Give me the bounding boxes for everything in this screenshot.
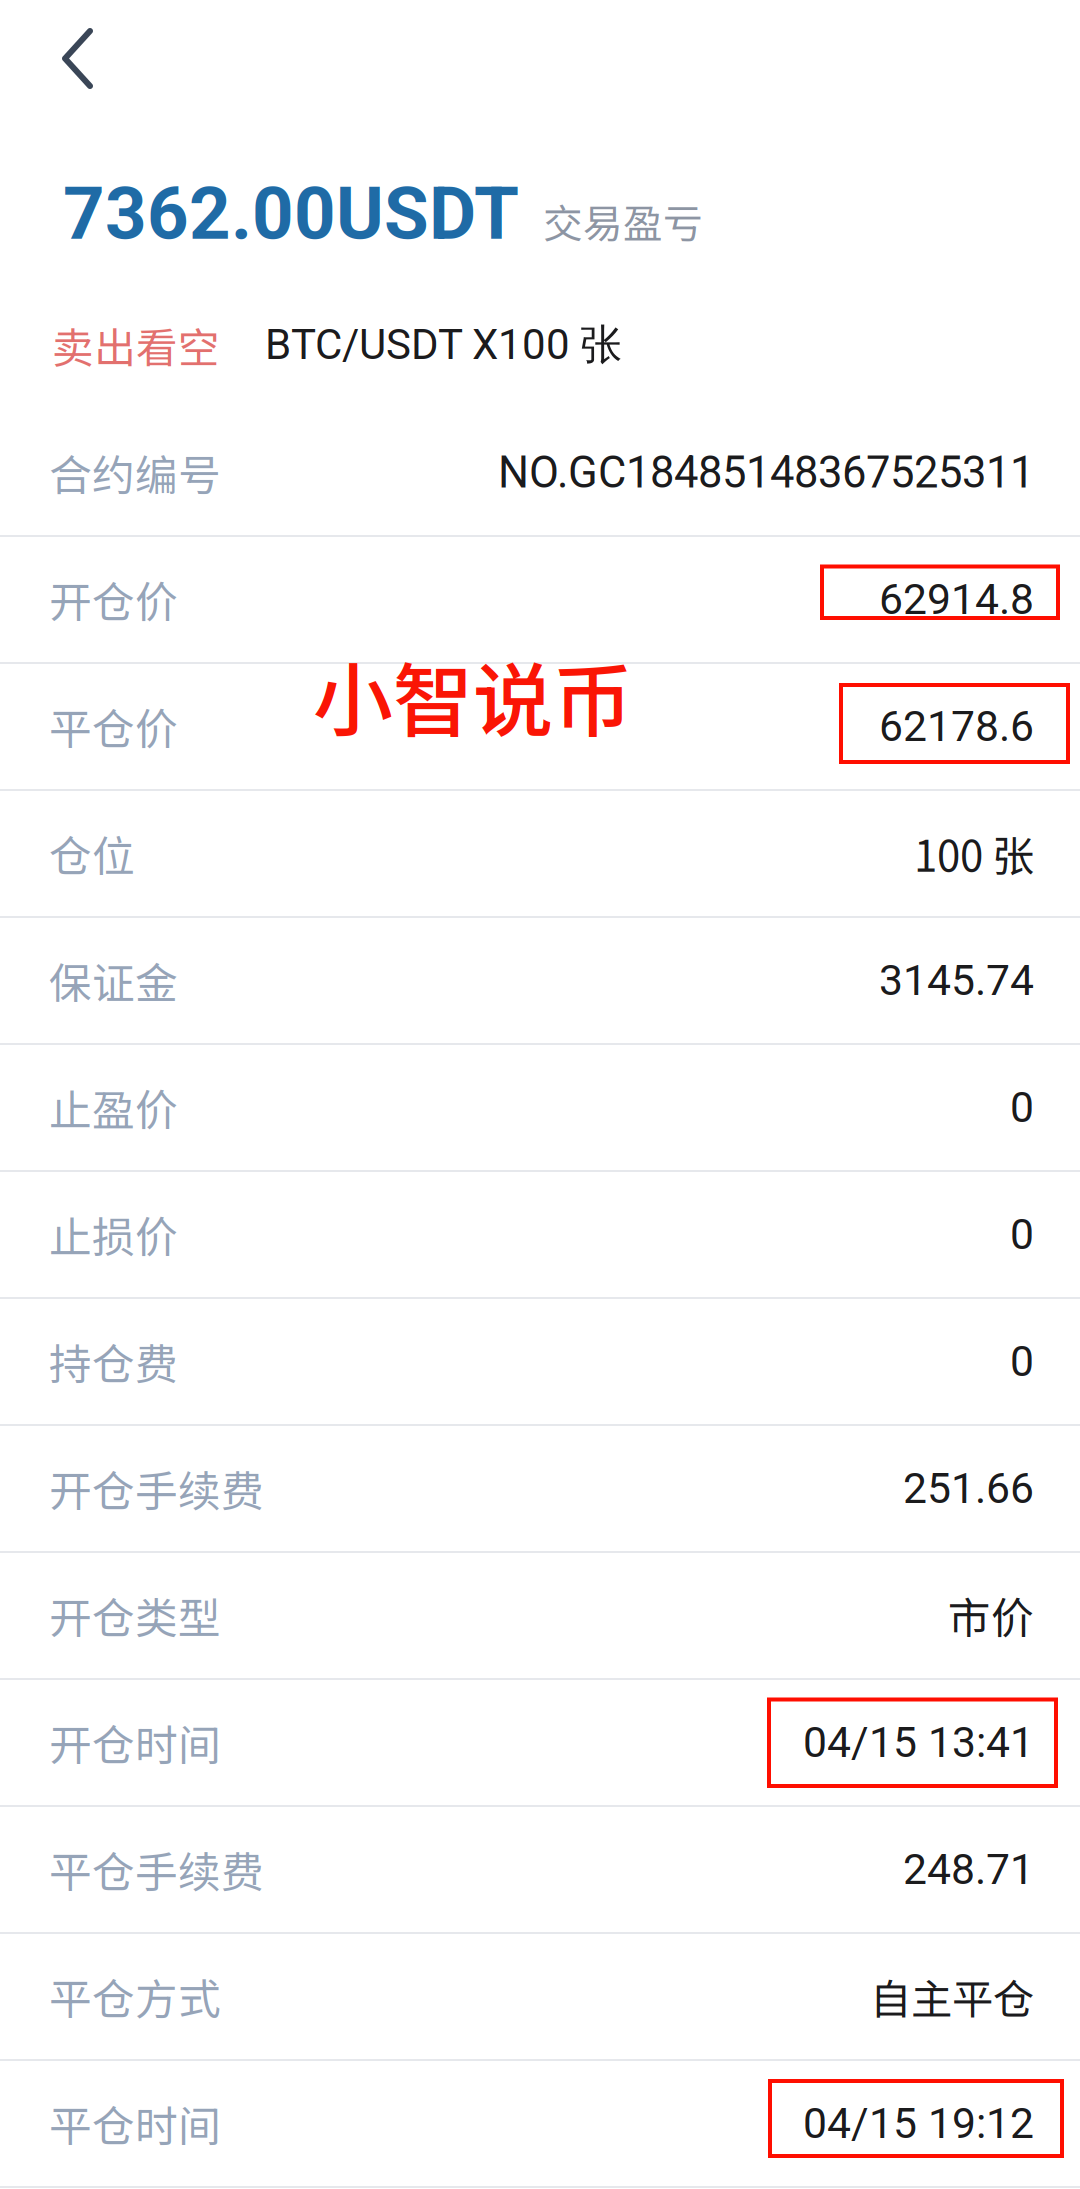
staticText: 62914.8 [879, 574, 1034, 624]
staticText: 0 [1010, 1209, 1034, 1259]
button[interactable]: 开仓价 [0, 537, 1080, 664]
staticText: 小智说币 [313, 637, 633, 753]
staticText: 卖出看空 [52, 315, 220, 375]
staticText: 开仓价 [49, 569, 178, 630]
button[interactable]: 保证金 [0, 918, 1080, 1045]
button[interactable]: 止盈价 [0, 1045, 1080, 1172]
staticText: NO.GC18485148367525311 [498, 447, 1034, 498]
staticText: 0 [1010, 1082, 1034, 1132]
staticText: 平仓方式 [49, 1966, 221, 2027]
button[interactable]: 仓位 [0, 791, 1080, 918]
staticText: 251.66 [903, 1463, 1034, 1513]
button[interactable]: 合约编号 [0, 410, 1080, 537]
staticText: 04/15 19:12 [803, 2098, 1034, 2148]
staticText: 合约编号 [49, 442, 221, 503]
staticText: 62178.6 [879, 701, 1034, 751]
staticText: 04/15 13:41 [803, 1717, 1034, 1767]
button[interactable]: 平仓方式 [0, 1934, 1080, 2061]
button[interactable]: 开仓类型 [0, 1553, 1080, 1680]
staticText: 3145.74 [879, 955, 1034, 1005]
button[interactable]: Back [18, 0, 136, 117]
button[interactable]: 持仓费 [0, 1299, 1080, 1426]
staticText: 248.71 [903, 1844, 1034, 1894]
staticText: 仓位 [49, 823, 135, 884]
button[interactable]: 平仓手续费 [0, 1807, 1080, 1934]
staticText: 止盈价 [49, 1077, 178, 1138]
staticText: 保证金 [49, 950, 178, 1011]
staticText: 自主平仓 [870, 1967, 1034, 2026]
button[interactable]: 平仓价 [0, 664, 1080, 791]
button[interactable]: 平仓时间 [0, 2061, 1080, 2188]
button[interactable]: 开仓手续费 [0, 1426, 1080, 1553]
staticText: 持仓费 [49, 1331, 178, 1392]
staticText: 开仓时间 [49, 1712, 221, 1773]
staticText: 交易盈亏 [543, 192, 703, 250]
staticText: 100 张 [914, 823, 1034, 884]
staticText: BTC/USDT X100 张 [265, 318, 622, 371]
staticText: 平仓价 [49, 696, 178, 757]
staticText: 0 [1010, 1336, 1034, 1386]
staticText: 开仓类型 [49, 1585, 221, 1646]
button[interactable]: 开仓时间 [0, 1680, 1080, 1807]
button[interactable]: 止损价 [0, 1172, 1080, 1299]
staticText: 止损价 [49, 1204, 178, 1265]
staticText: 开仓手续费 [49, 1458, 264, 1519]
staticText: 平仓手续费 [49, 1839, 264, 1900]
staticText: 市价 [948, 1585, 1034, 1646]
staticText: 7362.00USDT [63, 171, 519, 256]
staticText: 平仓时间 [49, 2093, 221, 2154]
